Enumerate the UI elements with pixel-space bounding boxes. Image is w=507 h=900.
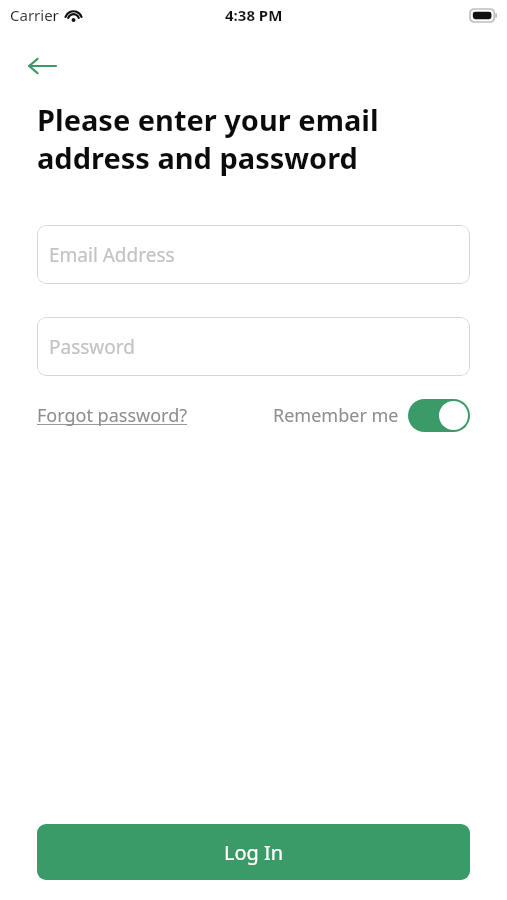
other: Remember me toggle, on — [408, 399, 470, 432]
staticText: Email Address — [49, 242, 175, 268]
staticText: Forgot password? — [37, 403, 188, 428]
button[interactable]: Email Address — [37, 225, 470, 284]
button[interactable]: Forgot password? — [37, 399, 188, 432]
staticText: Remember me — [273, 403, 399, 428]
staticText: Please enter your email address and pass… — [37, 100, 379, 177]
staticText: 4:38 PM — [225, 5, 283, 25]
staticText: Log In — [224, 839, 284, 866]
button[interactable]: Password — [37, 317, 470, 376]
button[interactable]: Back — [26, 44, 70, 88]
button[interactable]: Log In — [37, 824, 470, 880]
button[interactable]: Remember me — [273, 399, 470, 432]
staticText: Password — [49, 334, 135, 360]
staticText: Carrier — [10, 5, 59, 25]
